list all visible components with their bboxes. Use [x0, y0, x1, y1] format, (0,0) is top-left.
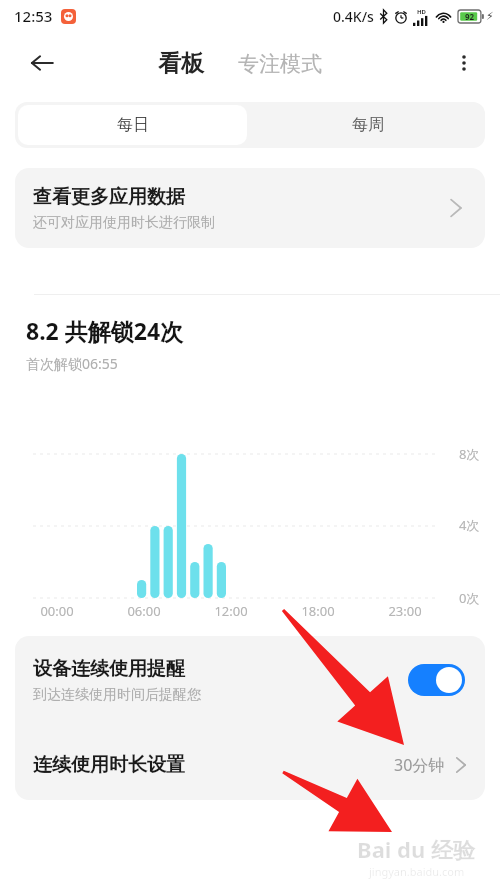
staticText: 看板	[158, 49, 204, 78]
staticText: 还可对应用使用时长进行限制	[33, 214, 215, 232]
staticText: 设备连续使用提醒	[33, 657, 185, 681]
staticText: HD	[417, 8, 426, 16]
button[interactable]: 看板	[152, 43, 210, 84]
staticText: 06:00	[127, 602, 161, 620]
staticText: 每日	[117, 115, 149, 135]
staticText: 30分钟	[394, 754, 445, 776]
staticText: jingyan.baidu.com	[369, 864, 465, 879]
staticText: 首次解锁06:55	[26, 354, 118, 373]
staticText: 12:53	[14, 6, 53, 26]
staticText: 连续使用时长设置	[33, 753, 185, 777]
staticText: 12:00	[214, 602, 248, 620]
button[interactable]: 每周	[250, 102, 485, 148]
button[interactable]: 每日	[18, 105, 247, 145]
staticText: 到达连续使用时间后提醒您	[33, 686, 201, 704]
button[interactable]: Back	[22, 43, 62, 83]
button[interactable]: 查看更多应用数据	[15, 168, 485, 248]
button[interactable]: Continuous use reminder toggle	[408, 664, 465, 696]
button[interactable]: 连续使用时长设置	[15, 730, 485, 800]
staticText: 8次	[459, 445, 480, 463]
staticText: 0次	[459, 589, 480, 607]
staticText: 92	[465, 11, 475, 22]
staticText: 每周	[352, 115, 384, 135]
staticText: ⚡	[486, 10, 494, 23]
staticText: Bai du 经验	[357, 834, 476, 864]
button[interactable]: 设备连续使用提醒	[15, 636, 485, 724]
staticText: 专注模式	[238, 51, 322, 77]
staticText: 0.4K/s	[333, 7, 374, 26]
button[interactable]: More options	[444, 43, 484, 83]
staticText: 00:00	[40, 602, 74, 620]
staticText: 8.2 共解锁24次	[26, 315, 184, 346]
staticText: 18:00	[301, 602, 335, 620]
staticText: 查看更多应用数据	[33, 185, 185, 209]
staticText: 23:00	[388, 602, 422, 620]
button[interactable]: 专注模式	[232, 45, 328, 83]
staticText: 4次	[459, 516, 480, 534]
